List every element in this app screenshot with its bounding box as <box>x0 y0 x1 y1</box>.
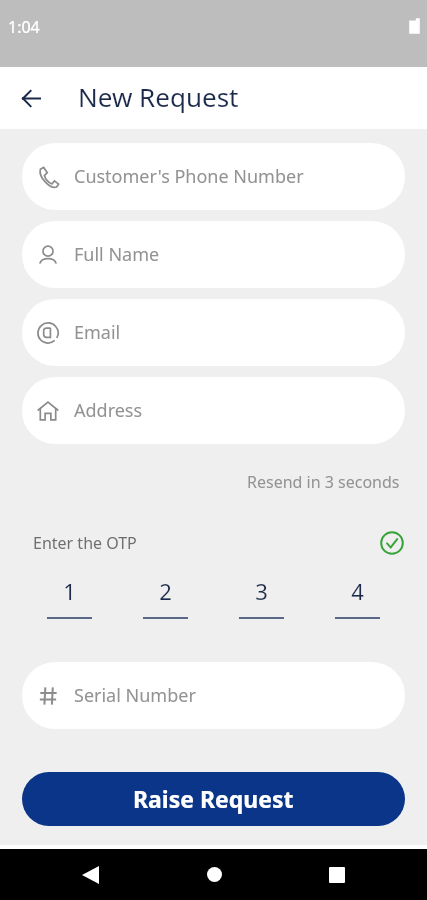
staticText: Enter the OTP <box>33 532 137 554</box>
button[interactable]: Customer's Phone Number <box>22 143 405 210</box>
button[interactable]: Back <box>8 75 54 121</box>
staticText: Customer's Phone Number <box>74 164 304 189</box>
button[interactable]: 1 <box>22 576 117 619</box>
staticText: Email <box>74 320 121 345</box>
button[interactable]: 4 <box>309 576 405 619</box>
button[interactable]: 2 <box>117 576 213 619</box>
button[interactable]: Raise Request <box>22 772 405 826</box>
button[interactable]: Verified <box>379 530 405 556</box>
staticText: 1:04 <box>8 16 40 38</box>
button[interactable]: Recent apps <box>292 849 382 900</box>
staticText: 1 <box>63 576 76 606</box>
button[interactable]: Home <box>169 849 259 900</box>
button[interactable]: Back <box>45 849 135 900</box>
staticText: New Request <box>78 79 239 114</box>
staticText: 3 <box>255 576 268 606</box>
button[interactable]: Full Name <box>22 221 405 288</box>
staticText: 4 <box>351 576 364 606</box>
staticText: 2 <box>159 576 172 606</box>
staticText: Full Name <box>74 242 160 267</box>
staticText: Raise Request <box>133 783 294 814</box>
staticText: Resend in 3 seconds <box>247 471 400 493</box>
button[interactable]: 3 <box>213 576 309 619</box>
staticText: Address <box>74 398 143 423</box>
staticText: Serial Number <box>74 683 196 708</box>
button[interactable]: Email <box>22 299 405 366</box>
button[interactable]: Address <box>22 377 405 444</box>
button[interactable]: Serial Number <box>22 662 405 729</box>
